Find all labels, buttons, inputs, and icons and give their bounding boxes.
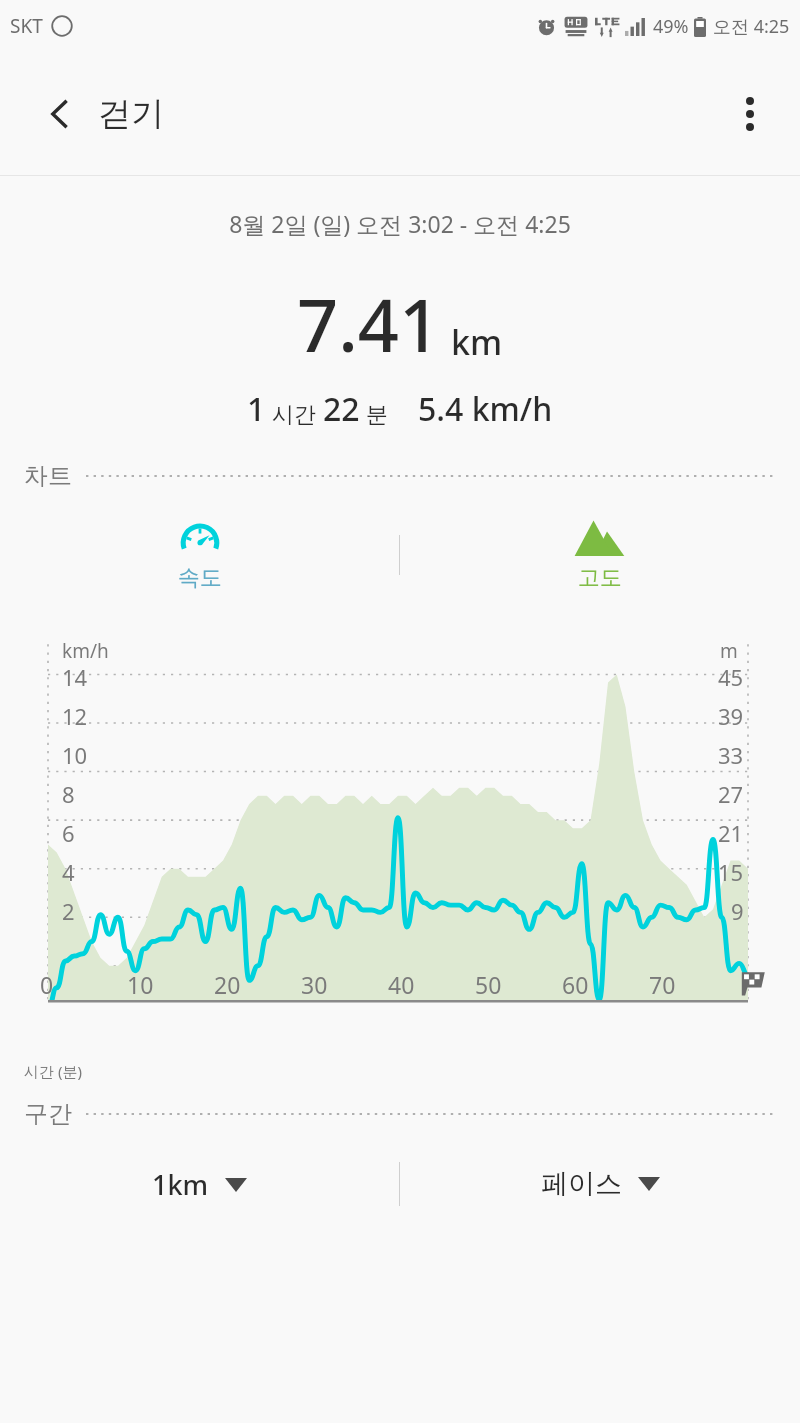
staticText: 2 [62, 896, 75, 926]
staticText: 7.41 [297, 275, 441, 373]
staticText: 고도 [578, 564, 622, 592]
button[interactable]: 페이스 [541, 1167, 660, 1201]
staticText: 4 [62, 857, 75, 887]
staticText: 30 [301, 969, 328, 1000]
staticText: km [451, 319, 503, 365]
staticText: 33 [718, 740, 744, 770]
staticText: km/h [62, 638, 109, 662]
staticText: 9 [731, 896, 744, 926]
staticText: 15 [718, 857, 744, 887]
staticText: 페이스 [541, 1167, 622, 1201]
button[interactable]: More options [722, 86, 778, 142]
staticText: 10 [127, 969, 154, 1000]
staticText: 1km [152, 1166, 209, 1203]
staticText: m [720, 638, 738, 662]
staticText: 시간 (분) [24, 1061, 82, 1081]
staticText: 12 [62, 701, 88, 731]
staticText: 27 [718, 779, 744, 809]
staticText: 49% [653, 14, 689, 39]
staticText: 70 [649, 969, 676, 1000]
staticText: 분 [366, 401, 388, 429]
staticText: 14 [62, 662, 88, 692]
staticText: 차트 [24, 461, 72, 491]
staticText: 40 [388, 969, 415, 1000]
staticText: 60 [562, 969, 589, 1000]
staticText: 20 [214, 969, 241, 1000]
staticText: 오전 4:25 [713, 14, 790, 39]
staticText: 시간 [272, 401, 316, 429]
button[interactable]: 속도 [175, 518, 225, 592]
staticText: 50 [475, 969, 502, 1000]
staticText: 10 [62, 740, 88, 770]
staticText: 걷기 [98, 93, 164, 135]
staticText: 속도 [178, 564, 222, 592]
staticText: 0 [40, 969, 54, 1000]
staticText: 8 [62, 779, 75, 809]
staticText: 22 [323, 387, 360, 431]
staticText: 21 [718, 818, 744, 848]
staticText: 구간 [24, 1099, 72, 1129]
staticText: 5.4 km/h [418, 387, 553, 431]
staticText: 8월 2일 (일) 오전 3:02 - 오전 4:25 [229, 208, 571, 239]
staticText: 45 [718, 662, 744, 692]
staticText: 39 [718, 701, 744, 731]
staticText: 6 [62, 818, 75, 848]
button[interactable]: Back [34, 88, 86, 140]
button[interactable]: 고도 [573, 518, 627, 592]
button[interactable]: 1km [152, 1166, 247, 1203]
staticText: 1 [247, 387, 266, 431]
staticText: SKT [10, 13, 43, 39]
